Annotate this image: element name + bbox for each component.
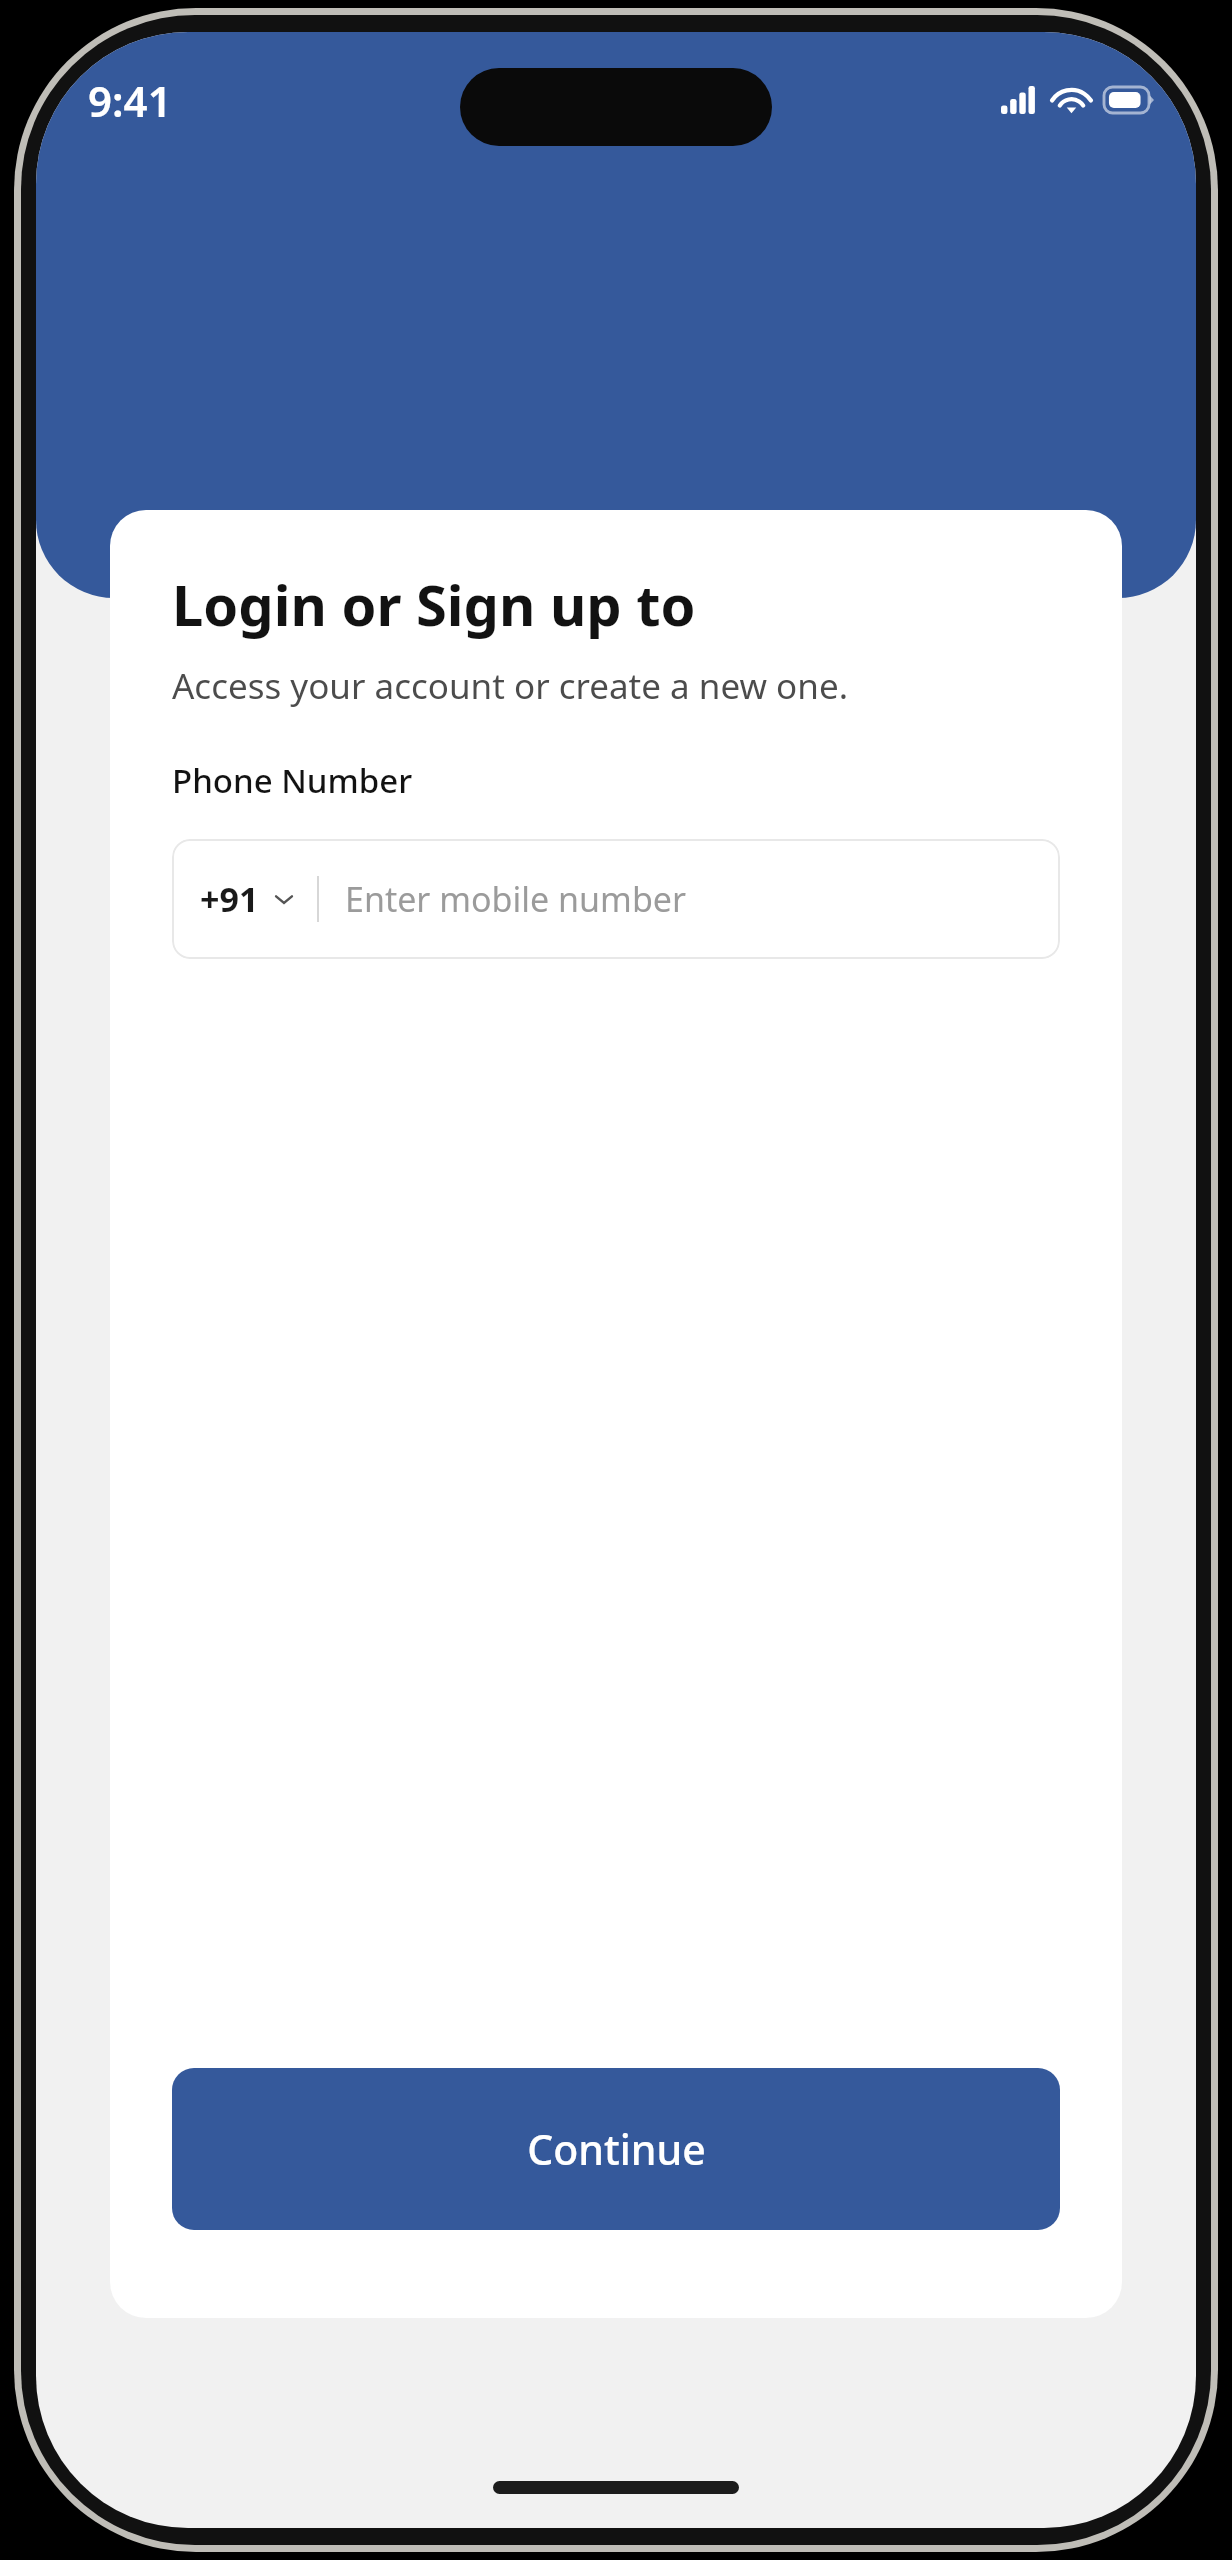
staticText: +91: [200, 876, 259, 922]
button[interactable]: Continue: [172, 2068, 1060, 2230]
button[interactable]: Enter mobile number: [319, 839, 1060, 959]
staticText: 9:41: [88, 72, 172, 129]
button[interactable]: Select country code: [172, 839, 1060, 959]
staticText: Login or Sign up to: [172, 566, 696, 642]
staticText: Continue: [527, 2121, 706, 2177]
staticText: Enter mobile number: [345, 876, 687, 922]
button[interactable]: Select country code: [172, 839, 317, 959]
staticText: Phone Number: [172, 758, 413, 803]
staticText: Access your account or create a new one.: [172, 662, 849, 710]
